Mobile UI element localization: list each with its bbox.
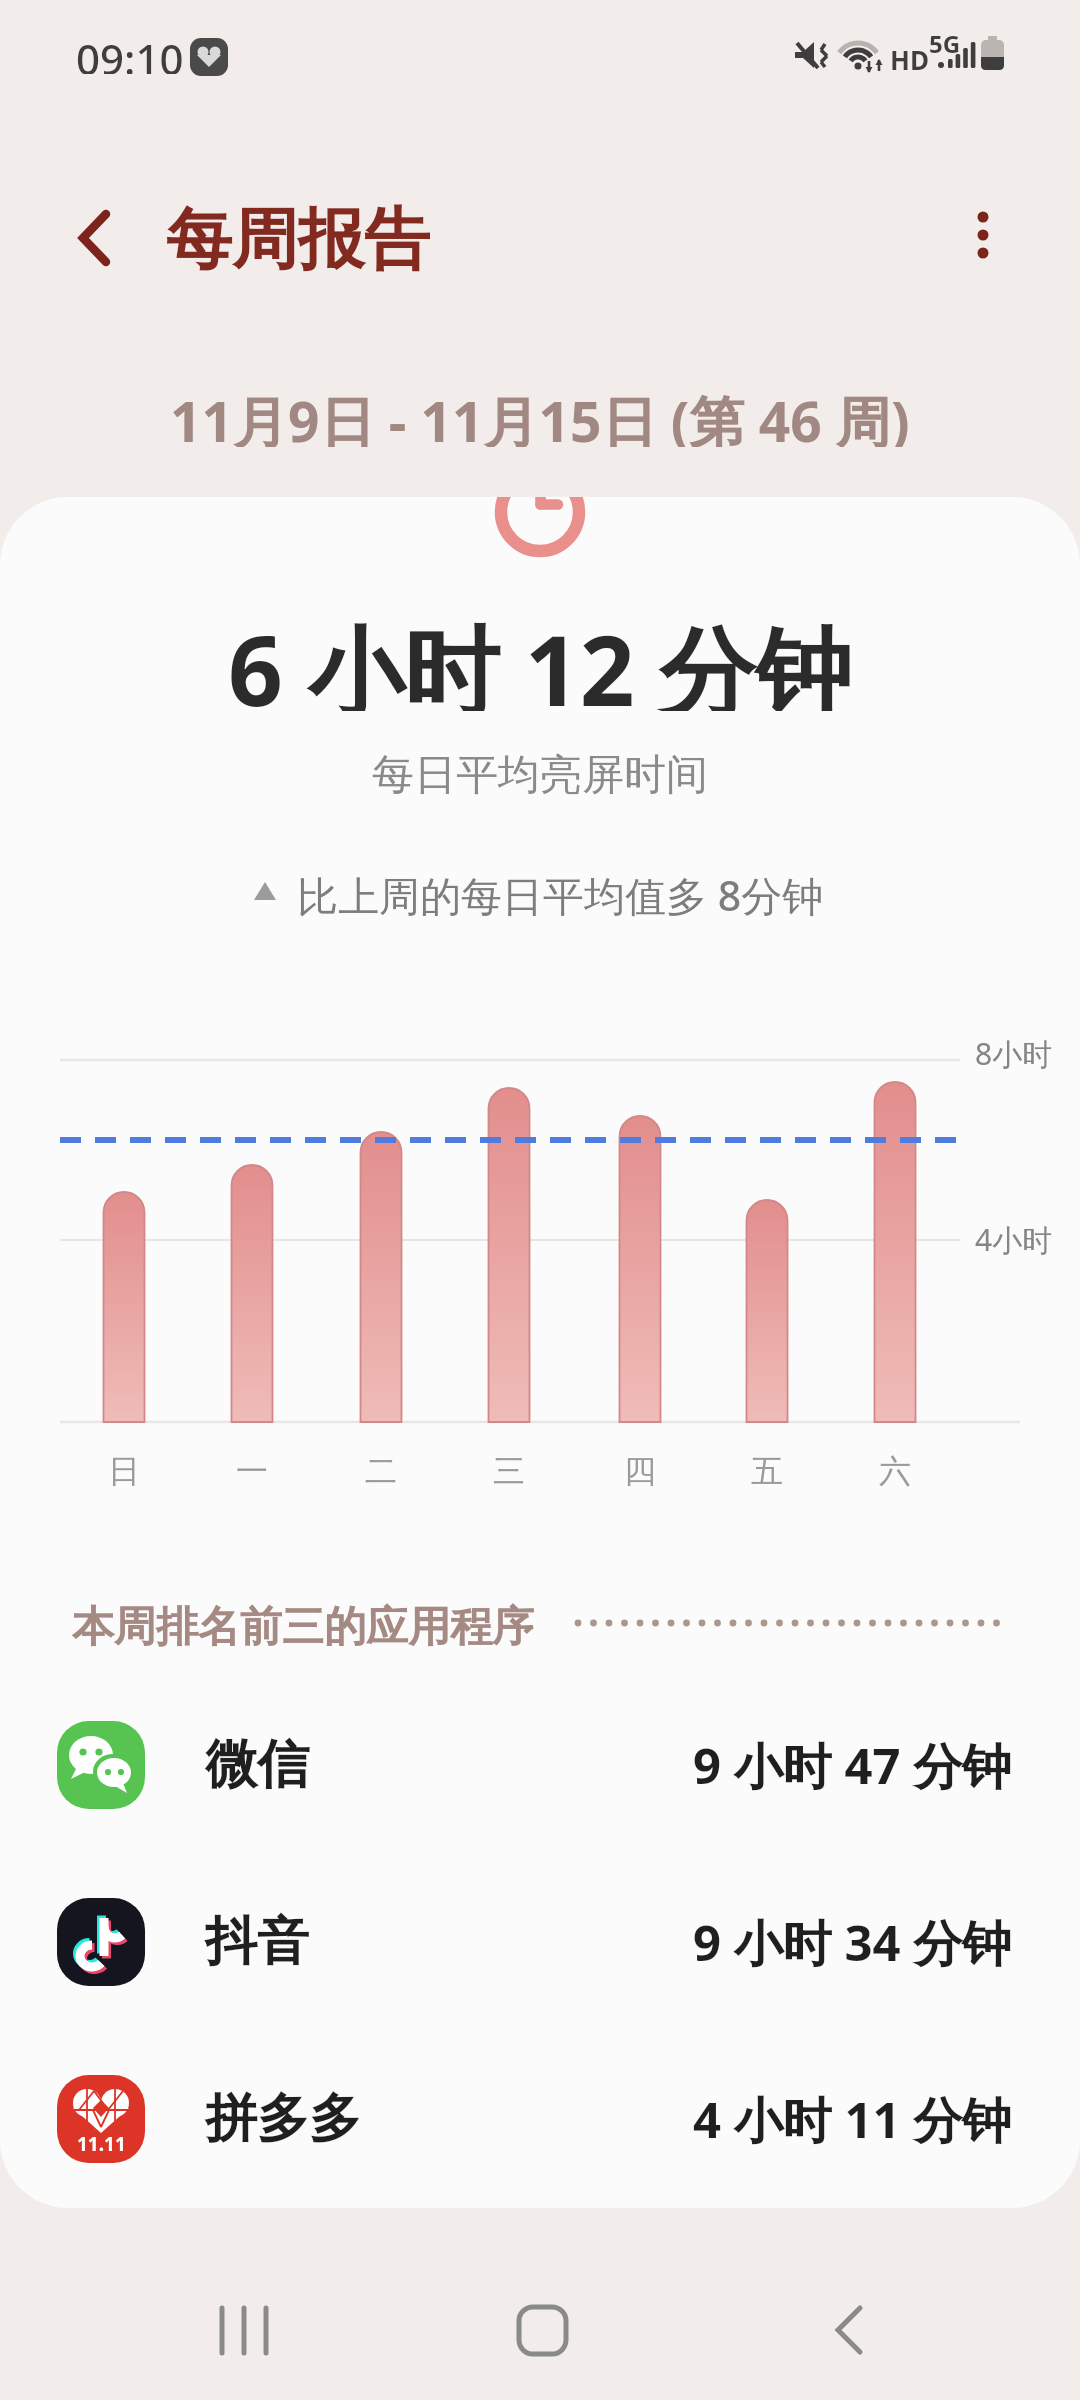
staticText: 每日平均亮屏时间 bbox=[372, 749, 708, 797]
button[interactable] bbox=[790, 2280, 920, 2390]
staticText: 09:10 bbox=[76, 30, 184, 74]
staticText: 四 bbox=[624, 1451, 656, 1491]
staticText: 9 小时 47 分钟 bbox=[693, 1732, 1012, 1799]
staticText: 4 小时 11 分钟 bbox=[693, 2086, 1012, 2153]
button[interactable] bbox=[478, 2280, 608, 2390]
staticText: 微信 bbox=[205, 1732, 309, 1798]
staticText: 日 bbox=[108, 1451, 140, 1491]
button[interactable]: 微信 bbox=[0, 1721, 1080, 1809]
staticText: 8小时 bbox=[975, 1033, 1053, 1074]
staticText: 一 bbox=[236, 1451, 268, 1491]
button[interactable] bbox=[950, 198, 1020, 274]
staticText: 9 小时 34 分钟 bbox=[693, 1909, 1012, 1976]
staticText: 本周排名前三的应用程序 bbox=[72, 1601, 534, 1649]
staticText: 二 bbox=[365, 1451, 397, 1491]
staticText: 11.11 bbox=[77, 2131, 126, 2155]
staticText: 5G bbox=[929, 27, 961, 53]
button[interactable]: 抖音 bbox=[0, 1898, 1080, 1986]
staticText: 6 小时 12 分钟 bbox=[228, 603, 852, 711]
staticText: 三 bbox=[493, 1451, 525, 1491]
staticText: 4小时 bbox=[975, 1219, 1053, 1260]
button[interactable] bbox=[180, 2280, 310, 2390]
staticText: HD bbox=[890, 42, 929, 70]
staticText: 拼多多 bbox=[205, 2086, 361, 2152]
staticText: 六 bbox=[879, 1451, 911, 1491]
staticText: 抖音 bbox=[205, 1909, 309, 1975]
staticText: 每周报告 bbox=[166, 198, 430, 274]
staticText: 比上周的每日平均值多 8分钟 bbox=[297, 867, 824, 917]
button[interactable] bbox=[60, 200, 130, 276]
button[interactable]: 拼多多 bbox=[0, 2075, 1080, 2163]
staticText: 11月9日 - 11月15日 (第 46 周) bbox=[170, 383, 910, 447]
staticText: 五 bbox=[751, 1451, 783, 1491]
